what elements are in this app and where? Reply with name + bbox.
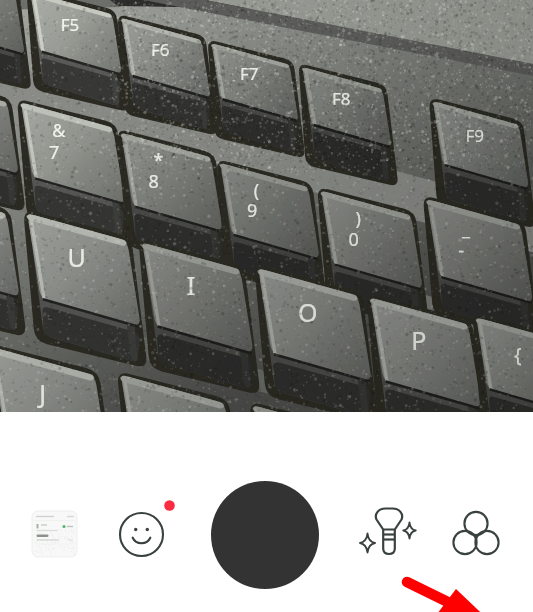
- button[interactable]: Effects: [109, 502, 174, 567]
- button[interactable]: Shutter: [211, 481, 319, 589]
- button[interactable]: Beauty: [358, 499, 420, 569]
- button[interactable]: Gallery: [32, 511, 77, 557]
- button[interactable]: Camera preview, tap to focus: [0, 0, 533, 412]
- button[interactable]: Filters: [446, 503, 506, 563]
